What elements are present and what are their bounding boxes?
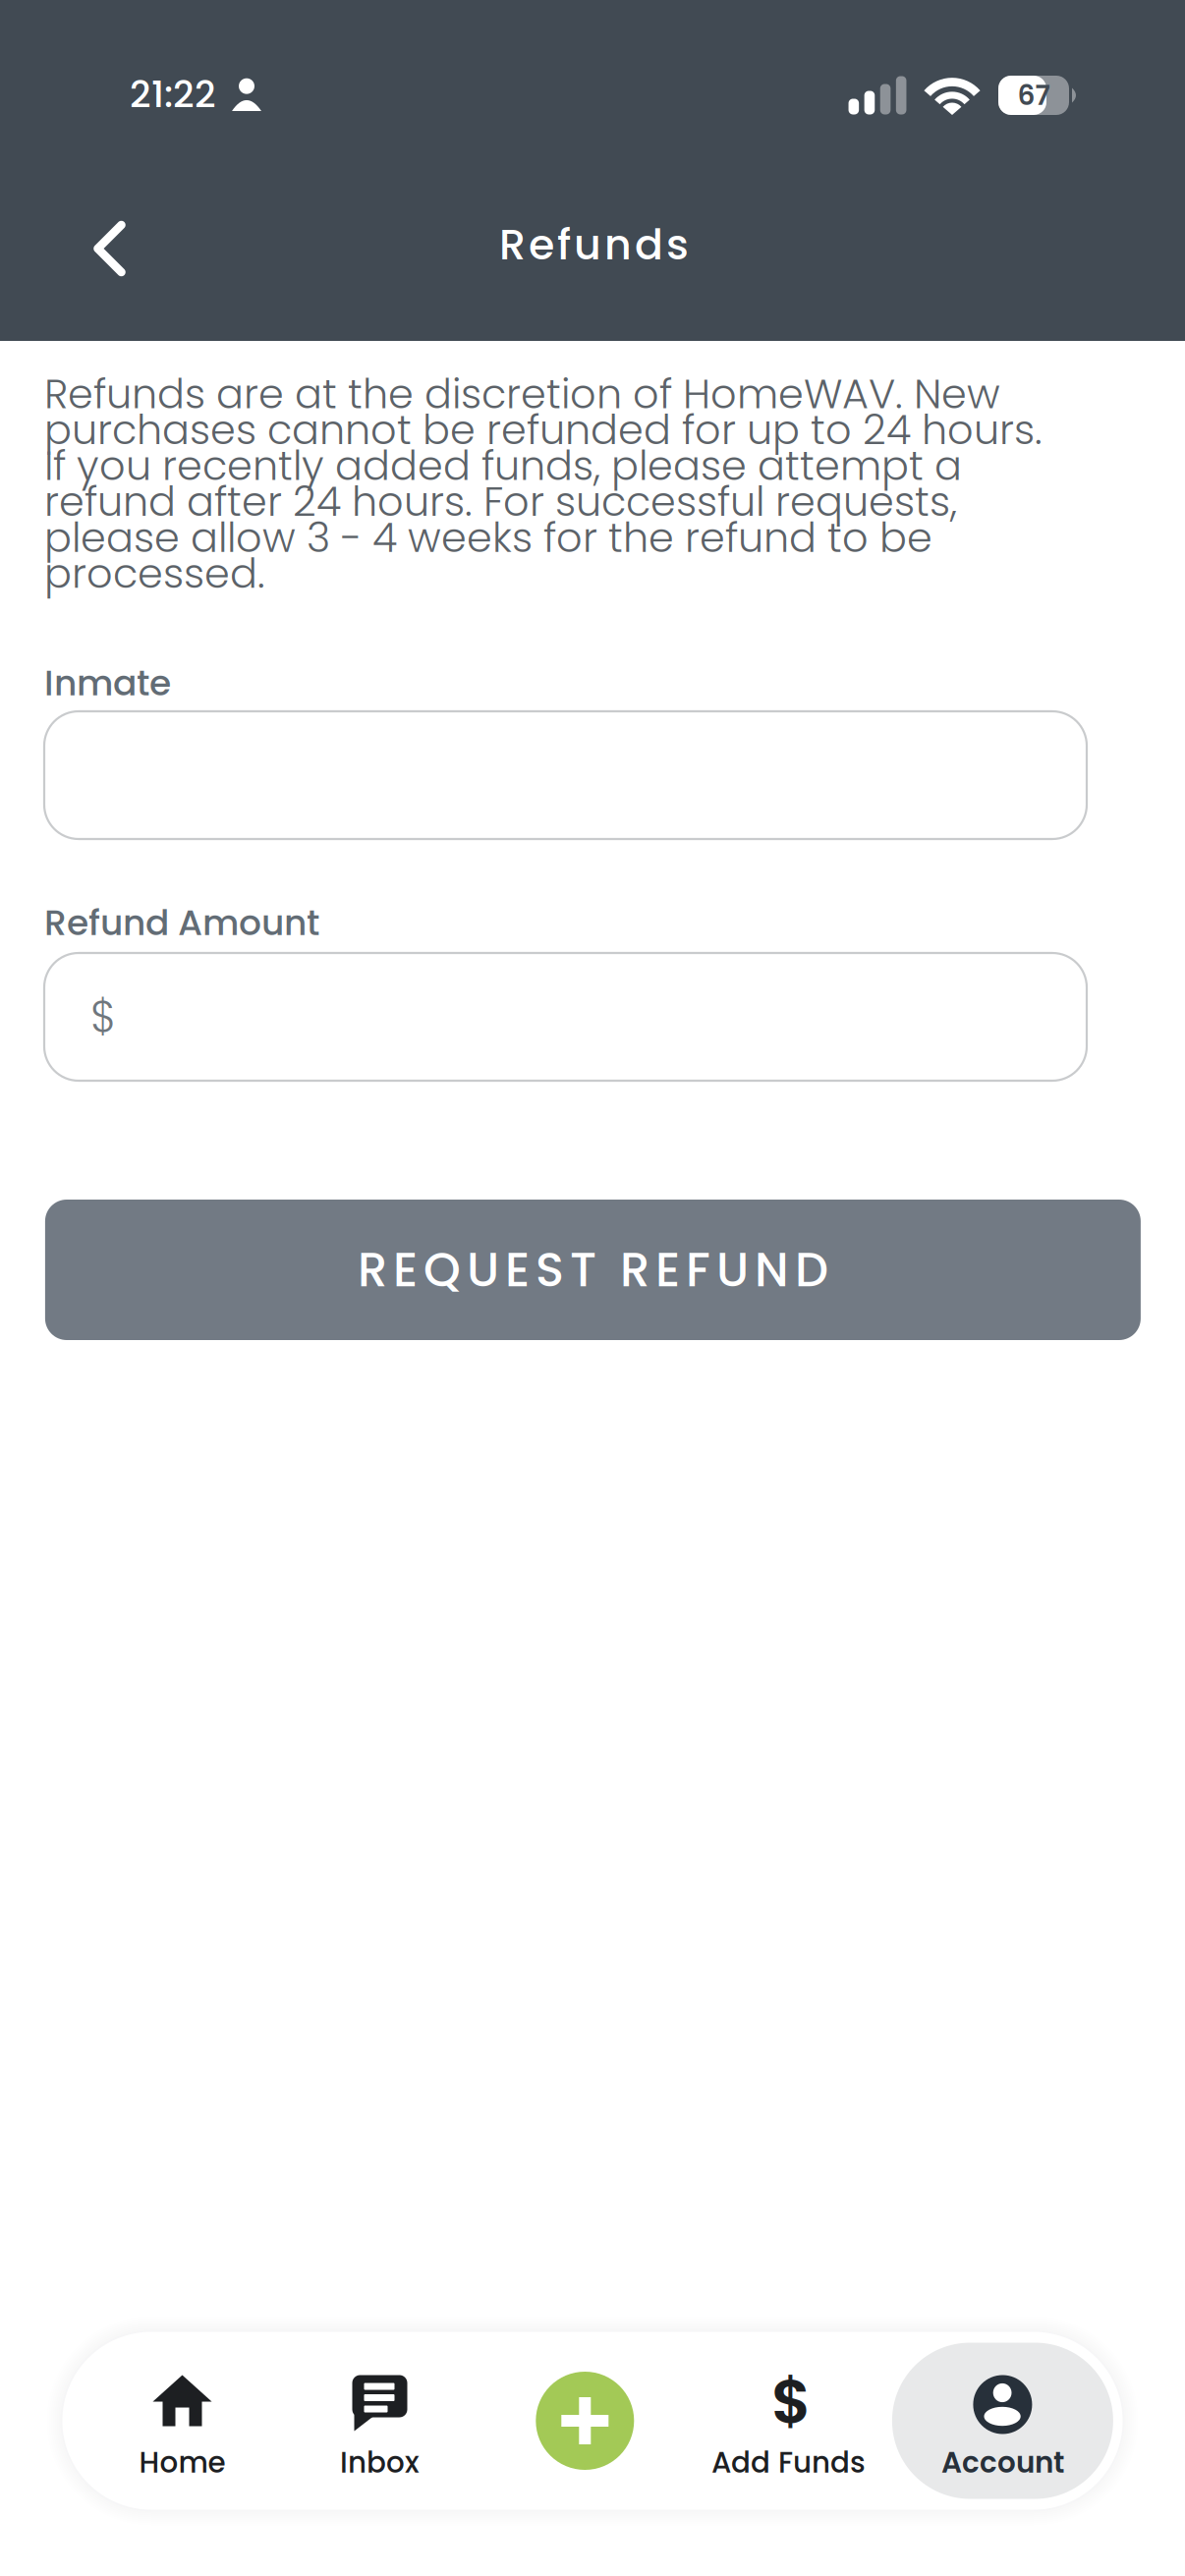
staticText: Refund Amount [44,898,319,947]
staticText: 21:22 [130,69,216,120]
button[interactable]: Back [56,195,164,303]
staticText: 67 [1017,76,1050,115]
staticText: $ [90,987,116,1047]
button[interactable]: Add funds [516,2343,654,2499]
staticText: Refunds [499,215,689,274]
button[interactable]: REQUEST REFUND [45,1200,1141,1340]
staticText: Inmate [44,658,171,708]
button[interactable]: Inbox [282,2343,478,2499]
staticText: Account [941,2442,1064,2483]
button[interactable]: Account [892,2343,1113,2499]
button[interactable]: Home [84,2343,281,2499]
staticText: REQUEST REFUND [358,1237,828,1303]
staticText: Inbox [340,2442,420,2483]
staticText: Home [139,2442,226,2483]
staticText: Refunds are at the discretion of HomeWAV… [44,365,1043,602]
staticText: $ [771,2358,812,2445]
button[interactable]: $ [690,2343,887,2499]
staticText: Add Funds [711,2442,866,2483]
